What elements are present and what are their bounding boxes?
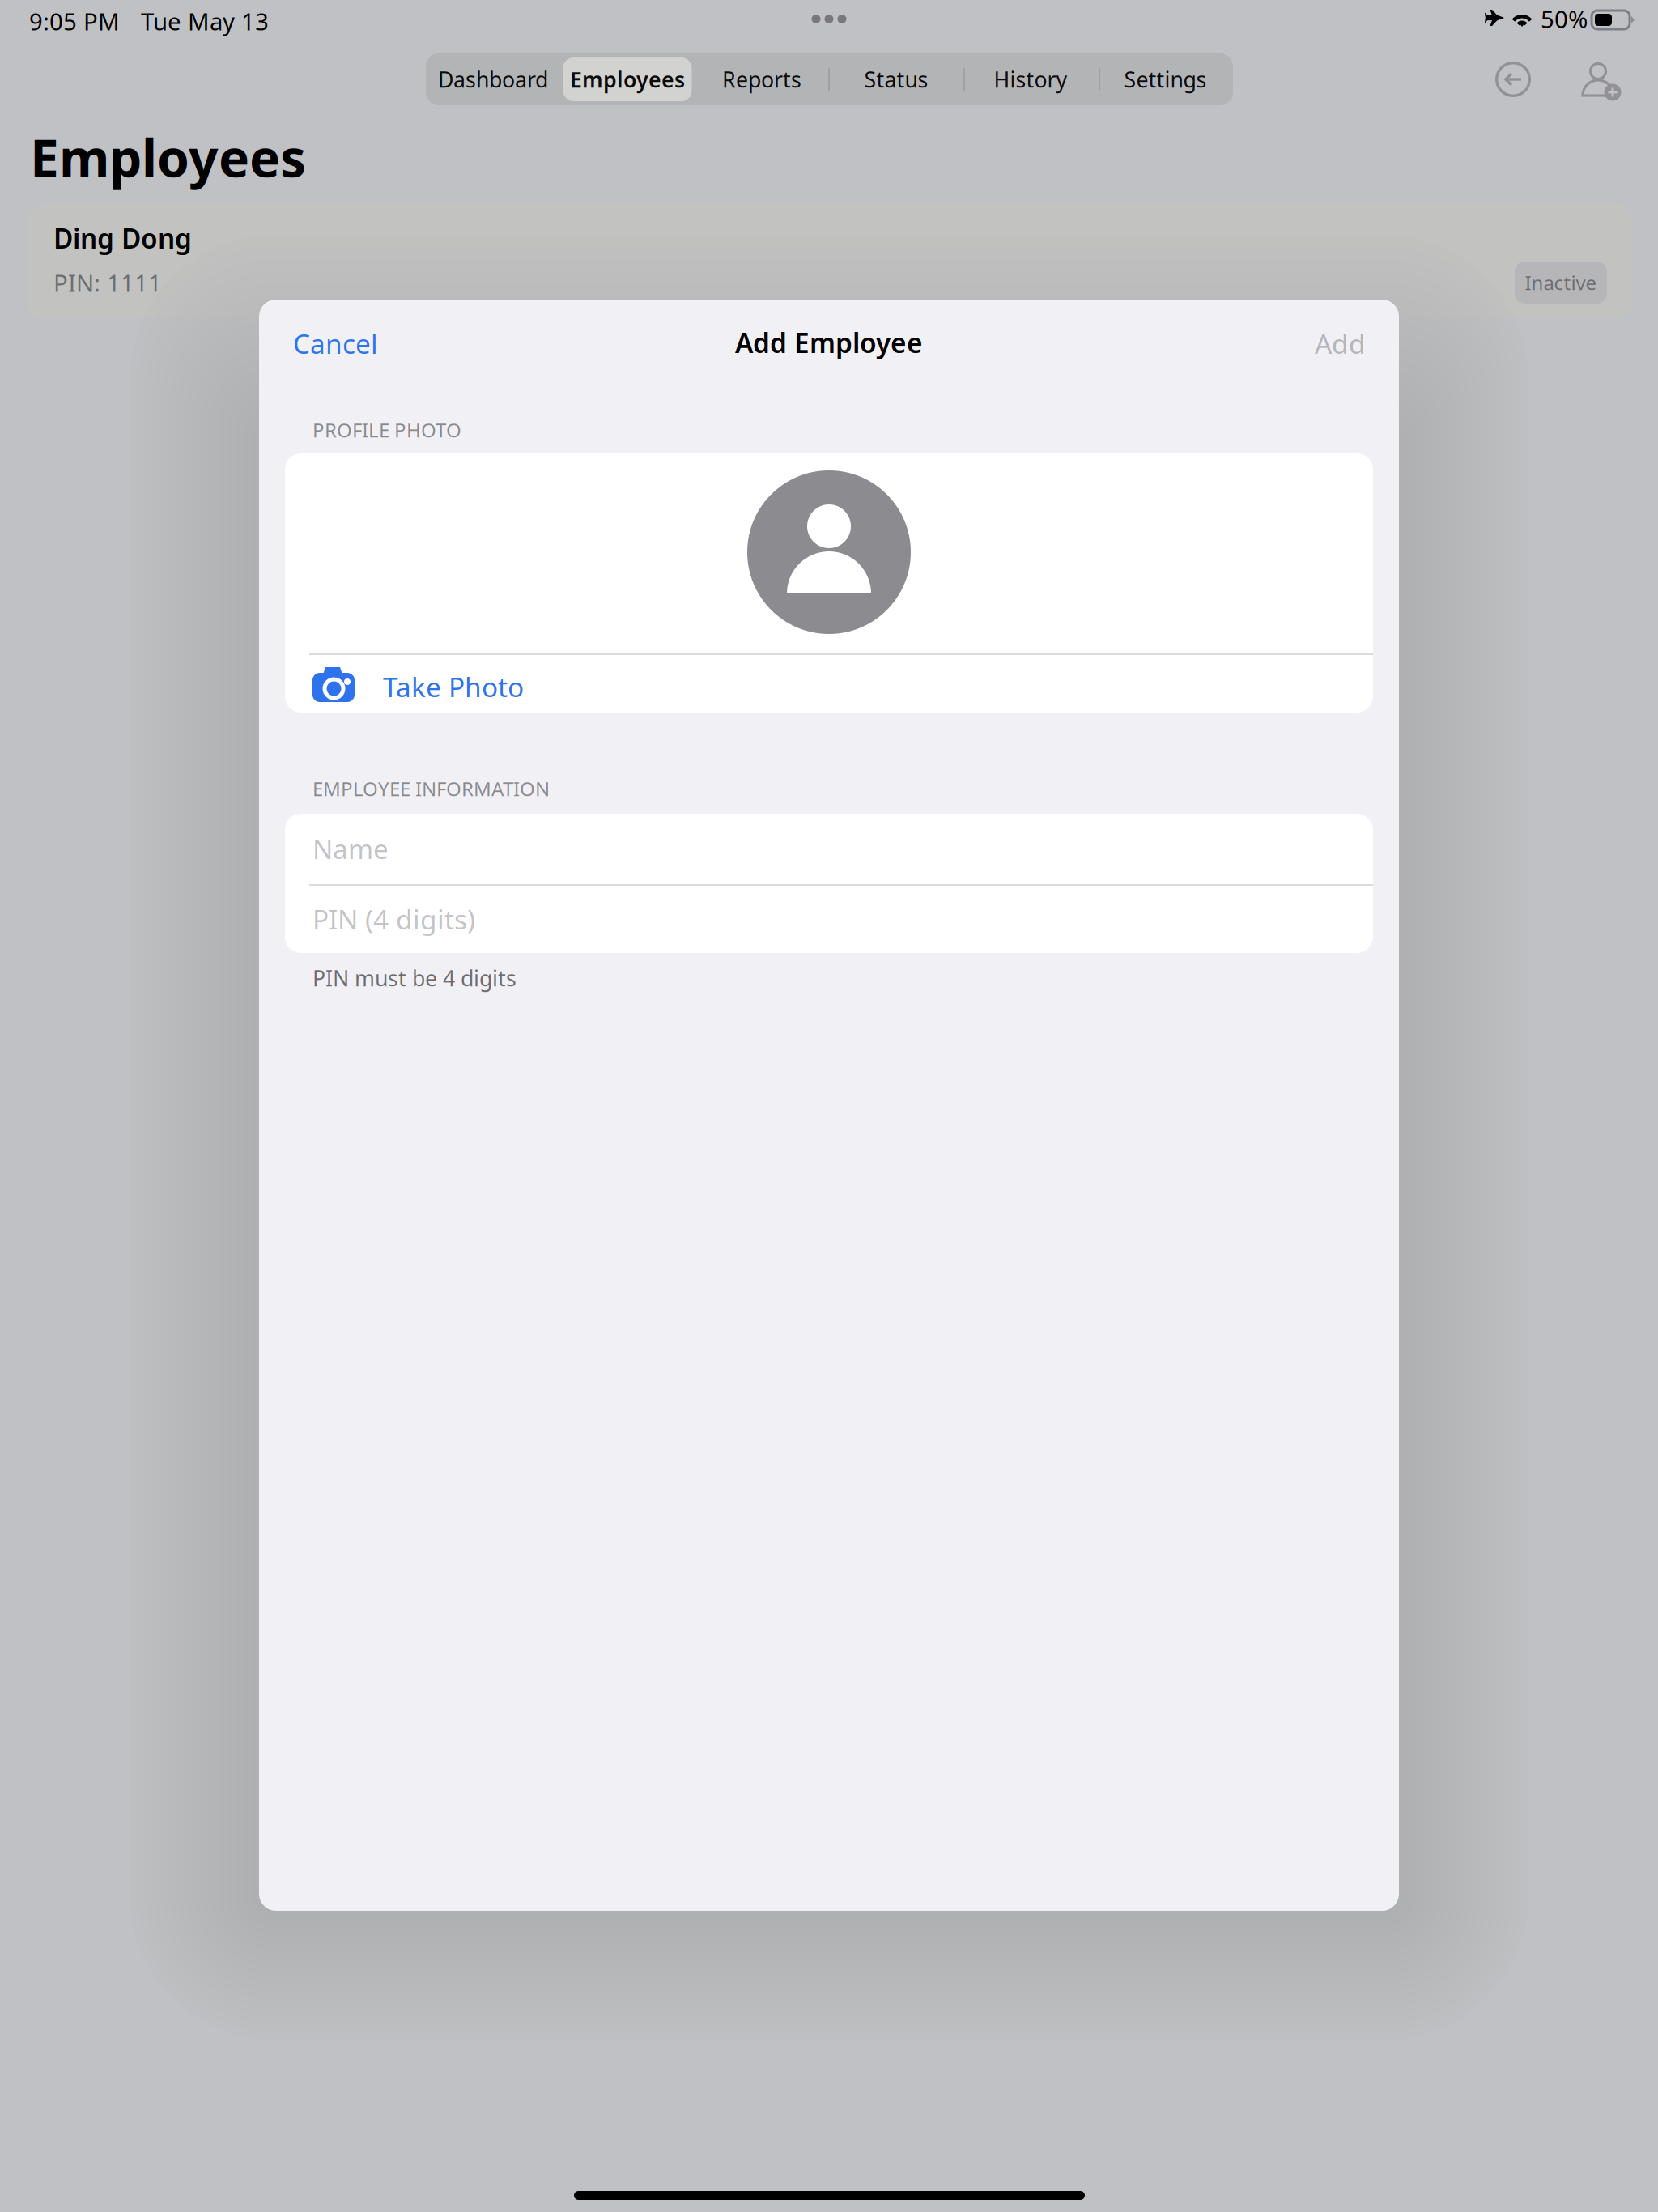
staticText: Dashboard xyxy=(438,65,548,94)
button[interactable]: Status xyxy=(829,53,963,105)
staticText: PROFILE PHOTO xyxy=(312,417,461,443)
staticText: Inactive xyxy=(1525,270,1597,296)
staticText: Settings xyxy=(1124,65,1207,94)
staticText: Cancel xyxy=(293,325,378,361)
button[interactable]: Ding Dong xyxy=(28,204,1631,318)
staticText: EMPLOYEE INFORMATION xyxy=(312,776,550,802)
button[interactable]: Cancel xyxy=(293,325,455,361)
staticText: Take Photo xyxy=(383,669,524,705)
staticText: 50% xyxy=(1541,3,1588,34)
staticText: Ding Dong xyxy=(53,220,192,256)
button[interactable]: Settings xyxy=(1098,53,1233,105)
button[interactable]: Back xyxy=(1495,62,1531,97)
staticText: 9:05 PM xyxy=(29,5,120,37)
staticText: History xyxy=(994,65,1067,94)
staticText: Add Employee xyxy=(735,325,923,360)
staticText: Reports xyxy=(722,65,801,94)
button[interactable]: Dashboard xyxy=(426,53,560,105)
button[interactable]: Employees xyxy=(560,53,695,105)
staticText: Tue May 13 xyxy=(141,5,269,37)
staticText: PIN must be 4 digits xyxy=(312,964,517,992)
button[interactable]: Add employee xyxy=(1579,59,1622,103)
staticText: Status xyxy=(864,65,928,94)
staticText: PIN (4 digits) xyxy=(312,901,475,937)
button[interactable]: Take Photo xyxy=(285,650,1373,713)
staticText: Employees xyxy=(570,65,685,94)
staticText: PIN: 1111 xyxy=(53,267,162,298)
staticText: Name xyxy=(312,831,389,867)
button[interactable]: Add xyxy=(1231,325,1366,361)
staticText: Employees xyxy=(30,123,306,191)
staticText: Add xyxy=(1315,325,1366,361)
button[interactable]: Name xyxy=(285,814,1373,883)
button[interactable]: PIN (4 digits) xyxy=(285,885,1373,953)
button[interactable]: History xyxy=(963,53,1098,105)
button[interactable]: Reports xyxy=(695,53,829,105)
